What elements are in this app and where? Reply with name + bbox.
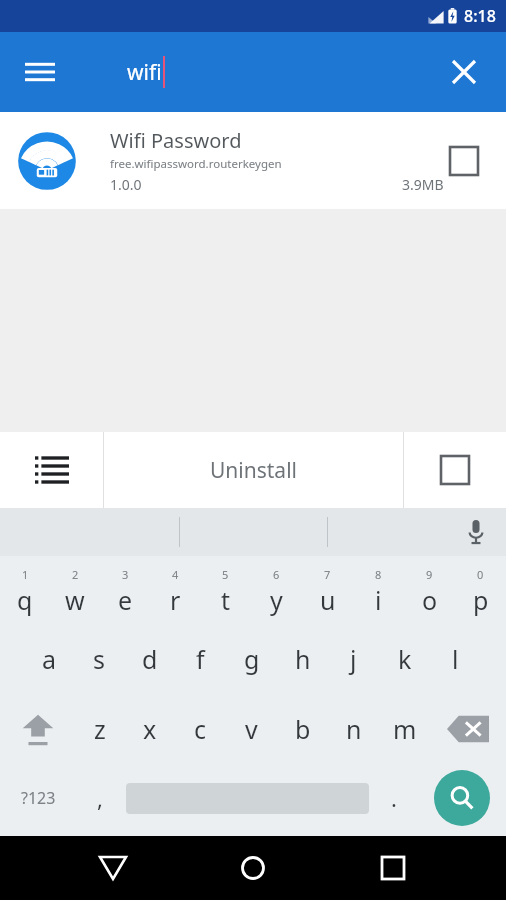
button[interactable]: 8 — [353, 556, 404, 624]
staticText: s — [93, 642, 105, 676]
staticText: y — [270, 583, 283, 617]
staticText: 3.9MB — [402, 175, 444, 194]
staticText: 1.0.0 — [110, 175, 142, 194]
staticText: g — [244, 642, 260, 676]
staticText: Uninstall — [210, 456, 297, 485]
staticText: e — [118, 583, 133, 617]
button[interactable]: Recents — [366, 841, 420, 895]
staticText: 7 — [324, 567, 331, 582]
staticText: ?123 — [21, 787, 56, 809]
staticText: . — [391, 783, 397, 813]
button[interactable]: k — [379, 624, 430, 694]
button[interactable]: 2 — [50, 556, 100, 624]
staticText: 4 — [172, 567, 179, 582]
staticText: m — [393, 712, 417, 746]
button[interactable]: n — [328, 694, 379, 764]
button[interactable]: z — [75, 694, 125, 764]
staticText: k — [398, 642, 412, 676]
staticText: Wifi Password — [110, 127, 242, 154]
button[interactable]: Select all — [404, 432, 506, 508]
staticText: z — [94, 712, 106, 746]
button[interactable]: j — [328, 624, 379, 694]
staticText: h — [295, 642, 311, 676]
button[interactable]: 5 — [200, 556, 251, 624]
button[interactable]: 0 — [455, 556, 506, 624]
button[interactable]: Clear search — [440, 48, 488, 96]
button[interactable]: 3 — [100, 556, 150, 624]
button[interactable]: d — [124, 624, 175, 694]
staticText: d — [142, 642, 158, 676]
staticText: f — [196, 642, 205, 676]
staticText: p — [473, 583, 489, 617]
staticText: 8:18 — [464, 5, 496, 27]
button[interactable]: Back — [86, 841, 140, 895]
staticText: 5 — [222, 567, 229, 582]
button[interactable]: h — [277, 624, 328, 694]
staticText: 2 — [72, 567, 79, 582]
staticText: 9 — [426, 567, 433, 582]
staticText: 8 — [375, 567, 382, 582]
staticText: n — [346, 712, 362, 746]
button[interactable]: Menu — [14, 46, 66, 98]
staticText: t — [221, 583, 231, 617]
button[interactable]: s — [74, 624, 124, 694]
button[interactable]: 7 — [302, 556, 353, 624]
button[interactable]: ?123 — [0, 764, 77, 832]
staticText: free.wifipassword.routerkeygen — [110, 156, 282, 172]
button[interactable]: a — [24, 624, 74, 694]
staticText: , — [97, 783, 103, 813]
staticText: q — [17, 583, 33, 617]
button[interactable]: Space — [123, 764, 371, 832]
staticText: o — [422, 583, 438, 617]
button[interactable]: b — [277, 694, 328, 764]
staticText: l — [452, 642, 459, 676]
staticText: 1 — [22, 567, 29, 582]
button[interactable]: Voice input — [458, 514, 494, 550]
button[interactable]: Period — [371, 764, 417, 832]
button[interactable]: 4 — [150, 556, 200, 624]
staticText: 0 — [477, 567, 484, 582]
button[interactable]: 6 — [251, 556, 302, 624]
button[interactable]: Uninstall — [104, 432, 403, 508]
staticText: i — [375, 583, 382, 617]
staticText: w — [65, 583, 85, 617]
button[interactable]: l — [430, 624, 481, 694]
button[interactable]: 9 — [404, 556, 455, 624]
button[interactable]: m — [379, 694, 430, 764]
staticText: j — [350, 642, 357, 676]
button[interactable]: Home — [226, 841, 280, 895]
button[interactable]: x — [125, 694, 175, 764]
button[interactable]: v — [226, 694, 277, 764]
button[interactable]: f — [175, 624, 226, 694]
button[interactable]: Wifi Password — [0, 112, 506, 209]
button[interactable]: List view — [0, 432, 103, 508]
button[interactable]: g — [226, 624, 277, 694]
staticText: c — [194, 712, 207, 746]
button[interactable]: 1 — [0, 556, 50, 624]
button[interactable]: Shift — [0, 694, 75, 764]
button[interactable]: Comma — [77, 764, 123, 832]
staticText: 3 — [122, 567, 129, 582]
button[interactable]: Select app — [444, 141, 484, 181]
button[interactable]: Search — [417, 764, 506, 832]
staticText: x — [143, 712, 157, 746]
staticText: u — [320, 583, 336, 617]
staticText: b — [295, 712, 311, 746]
button[interactable]: Backspace — [430, 694, 506, 764]
button[interactable]: c — [175, 694, 226, 764]
staticText: a — [42, 642, 57, 676]
staticText: r — [170, 583, 181, 617]
staticText: 6 — [273, 567, 280, 582]
staticText: v — [245, 712, 258, 746]
staticText: wifi — [127, 58, 162, 87]
